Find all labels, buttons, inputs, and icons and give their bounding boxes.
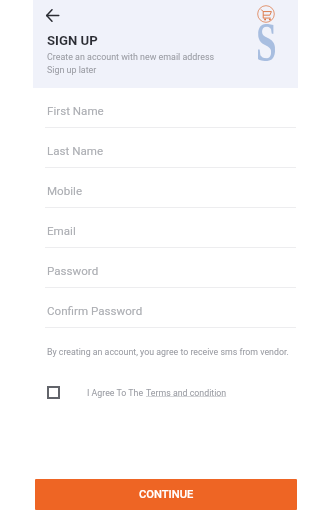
button[interactable]: CONTINUE xyxy=(35,479,297,510)
button[interactable]: Mobile xyxy=(33,168,298,208)
staticText: Confirm Password xyxy=(47,304,143,318)
staticText: Sign up later xyxy=(47,65,97,75)
button[interactable]: Email xyxy=(33,208,298,248)
button[interactable]: Password xyxy=(33,248,298,288)
staticText: Password xyxy=(47,264,99,278)
button[interactable]: Confirm Password xyxy=(33,288,298,328)
button[interactable]: First Name xyxy=(33,88,298,128)
staticText: Last Name xyxy=(47,144,104,158)
staticText: Create an account with new email address xyxy=(47,52,215,62)
staticText: Email xyxy=(47,224,76,238)
button[interactable]: I Agree To The xyxy=(47,386,227,399)
staticText: CONTINUE xyxy=(139,488,194,501)
staticText: SIGN UP xyxy=(47,33,98,48)
staticText: I Agree To The xyxy=(87,388,146,398)
button[interactable]: Back xyxy=(39,2,65,28)
staticText: Mobile xyxy=(47,184,83,198)
button[interactable]: Terms and condition xyxy=(146,388,227,398)
button[interactable]: Last Name xyxy=(33,128,298,168)
staticText: First Name xyxy=(47,104,104,118)
staticText: By creating an account, you agree to rec… xyxy=(47,347,289,357)
